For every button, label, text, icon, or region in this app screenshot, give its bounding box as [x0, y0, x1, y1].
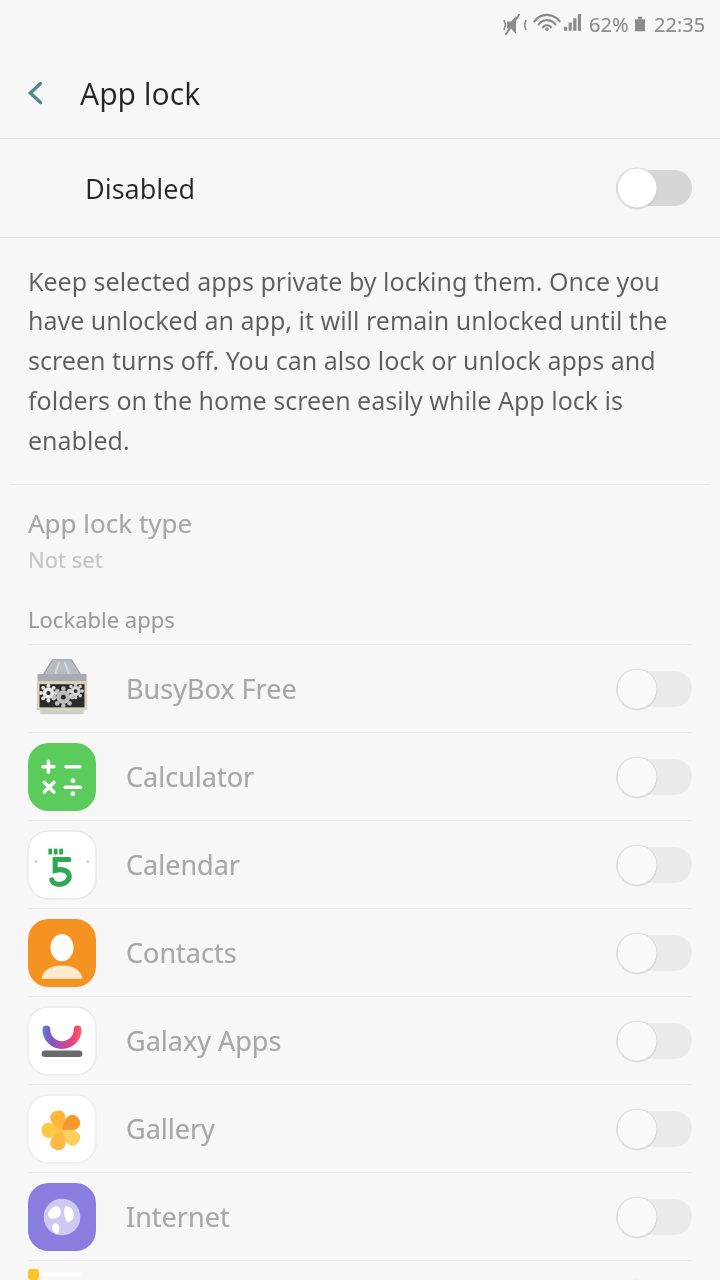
staticText: Lockable apps [28, 604, 175, 634]
staticText: Keep selected apps private by locking th… [28, 264, 692, 458]
staticText: Galaxy Apps [126, 1022, 616, 1059]
button[interactable]: Galaxy Apps [0, 997, 720, 1084]
button[interactable]: Disabled [0, 139, 720, 237]
staticText: BusyBox Free [126, 670, 616, 707]
button[interactable]: Internet [0, 1173, 720, 1260]
button[interactable]: Gallery [0, 1085, 720, 1172]
button[interactable]: Calendar [0, 821, 720, 908]
staticText: Disabled [85, 170, 616, 207]
button[interactable]: App lock type [0, 485, 720, 588]
staticText: App lock [80, 73, 201, 114]
staticText: Calendar [126, 846, 616, 883]
staticText: App lock type [28, 505, 193, 540]
button[interactable]: Contacts [0, 909, 720, 996]
staticText: Not set [28, 544, 103, 574]
staticText: Calculator [126, 758, 616, 795]
staticText: Contacts [126, 934, 616, 971]
staticText: 22:35 [654, 11, 706, 38]
staticText: Gallery [126, 1110, 616, 1147]
button[interactable]: BusyBox Free [0, 645, 720, 732]
button[interactable]: Back [8, 65, 64, 121]
staticText: 62% [589, 11, 629, 38]
button[interactable]: Calculator [0, 733, 720, 820]
staticText: Internet [126, 1198, 616, 1235]
button[interactable] [0, 1261, 720, 1280]
